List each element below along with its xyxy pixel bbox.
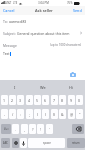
button[interactable]: 0 [76, 95, 83, 105]
staticText: We [40, 85, 46, 90]
button[interactable]: 3 [17, 95, 24, 105]
button[interactable]: ABC [1, 138, 10, 148]
button[interactable]: We [29, 80, 57, 94]
staticText: 4 [28, 98, 31, 103]
staticText: . [15, 127, 16, 132]
staticText: 2 [11, 98, 14, 103]
staticText: / [12, 112, 14, 117]
button[interactable]: & [59, 109, 66, 119]
button[interactable]: Subject: [3, 27, 82, 39]
staticText: $ [53, 112, 56, 117]
button[interactable]: 4 [26, 95, 33, 105]
staticText: Send [73, 8, 82, 13]
staticText: General question about this item [17, 31, 70, 36]
button[interactable]: . [12, 124, 19, 134]
staticText: @ [70, 112, 74, 117]
staticText: , [24, 127, 25, 132]
staticText: ! [40, 127, 41, 132]
staticText: 6 [44, 98, 47, 103]
staticText: Cancel [3, 8, 15, 13]
staticText: I [14, 85, 16, 90]
button[interactable]: ' [46, 124, 53, 134]
button[interactable]: - [1, 109, 8, 119]
staticText: Text [3, 51, 10, 56]
staticText: & [61, 112, 64, 117]
staticText: - [4, 112, 6, 117]
staticText: ( [37, 112, 39, 117]
staticText: Ask seller [35, 8, 53, 13]
staticText: ; [29, 112, 30, 117]
staticText: 8 [61, 98, 64, 103]
button[interactable]: Dictate [20, 138, 27, 148]
button[interactable]: : [17, 109, 24, 119]
button[interactable]: ! [37, 124, 44, 134]
staticText: 3:04 PM [38, 1, 49, 5]
button[interactable]: 9 [68, 95, 75, 105]
staticText: : [20, 112, 21, 117]
staticText: 1 [3, 98, 6, 103]
button[interactable]: Switch keyboard [12, 138, 19, 148]
staticText: LTE [13, 1, 18, 5]
staticText: 9 [70, 98, 73, 103]
button[interactable]: space [28, 138, 65, 148]
button[interactable]: @ [68, 109, 75, 119]
button[interactable]: / [9, 109, 16, 119]
staticText: " [79, 112, 81, 117]
staticText: aarmodi83 [9, 19, 27, 24]
button[interactable]: 8 [59, 95, 66, 105]
staticText: ? [32, 127, 34, 132]
staticText: 5 [36, 98, 39, 103]
button[interactable]: Add photo [68, 70, 77, 79]
staticText: ) [45, 112, 47, 117]
staticText: 3 [19, 98, 22, 103]
button[interactable]: ( [34, 109, 41, 119]
button[interactable]: To: [3, 15, 82, 27]
staticText: 76% [67, 1, 73, 5]
button[interactable]: 7 [51, 95, 58, 105]
button[interactable]: " [76, 109, 83, 119]
button[interactable]: Backspace [72, 124, 84, 134]
button[interactable]: 1 [1, 95, 8, 105]
staticText: #+= [4, 127, 9, 131]
button[interactable]: Cancel [3, 8, 15, 13]
button[interactable]: return [67, 138, 85, 148]
staticText: To: [3, 19, 9, 24]
staticText: space [43, 141, 51, 145]
button[interactable]: $ [51, 109, 58, 119]
staticText: Subject: [3, 31, 17, 36]
button[interactable]: ) [42, 109, 49, 119]
staticText: ' [49, 127, 50, 132]
staticText: Message [3, 43, 17, 47]
staticText: 0 [78, 98, 81, 103]
button[interactable]: I [0, 80, 29, 94]
button[interactable]: ; [26, 109, 33, 119]
button[interactable]: 5 [34, 95, 41, 105]
button[interactable]: 6 [42, 95, 49, 105]
button[interactable]: #+= [1, 124, 11, 134]
button[interactable]: Hi [57, 80, 85, 94]
button[interactable]: , [21, 124, 28, 134]
button[interactable]: 2 [9, 95, 16, 105]
staticText: 7 [53, 98, 56, 103]
staticText: AT&T [5, 1, 12, 5]
button[interactable]: ? [29, 124, 36, 134]
staticText: Hi [69, 85, 73, 90]
button[interactable]: Send [73, 8, 82, 13]
staticText: return [72, 141, 80, 145]
staticText: (up to 1000 characters) [50, 43, 82, 47]
staticText: ABC [3, 141, 8, 145]
